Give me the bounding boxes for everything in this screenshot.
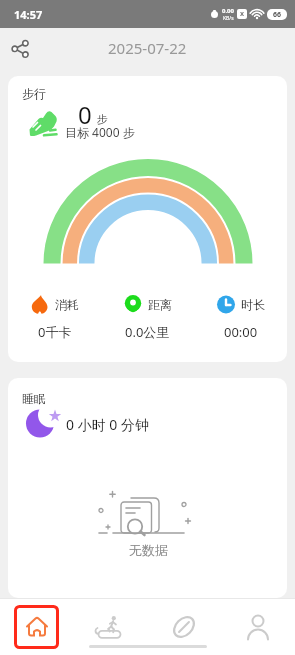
button[interactable] <box>221 598 295 655</box>
staticText: KB/s <box>223 15 234 22</box>
staticText: 66 <box>273 10 282 20</box>
staticText: 00:00 <box>224 323 258 341</box>
staticText: 14:57 <box>14 7 43 22</box>
staticText: 时长 <box>241 297 265 312</box>
button[interactable] <box>0 598 73 655</box>
button[interactable] <box>147 598 221 655</box>
staticText: x <box>240 9 245 19</box>
staticText: 距离 <box>148 297 172 312</box>
staticText: 无数据 <box>129 542 168 558</box>
staticText: 0千卡 <box>38 323 72 341</box>
button[interactable]: 睡眠 <box>8 378 287 598</box>
button[interactable] <box>6 34 34 62</box>
staticText: 目标 4000 步 <box>65 124 135 140</box>
staticText: 步行 <box>22 86 46 101</box>
button[interactable] <box>73 598 147 655</box>
staticText: 消耗 <box>55 297 79 312</box>
staticText: 0 小时 0 分钟 <box>66 415 149 434</box>
staticText: 0.0公里 <box>125 323 170 341</box>
staticText: 2025-07-22 <box>108 38 187 58</box>
staticText: 0 <box>78 98 92 131</box>
staticText: 步 <box>97 112 108 126</box>
button[interactable]: 步行 <box>8 76 287 362</box>
staticText: 0.00 <box>222 7 234 15</box>
staticText: 睡眠 <box>22 391 46 406</box>
